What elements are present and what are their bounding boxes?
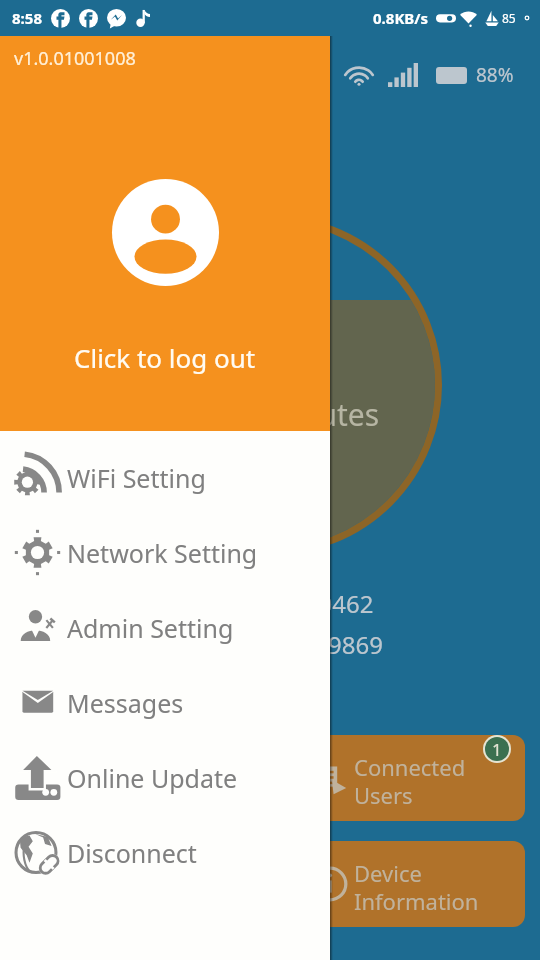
button[interactable]: Connected Users — [166, 735, 525, 821]
button[interactable]: WiFi Setting — [0, 440, 330, 515]
staticText: Device Information — [354, 858, 479, 916]
button[interactable]: Admin Setting — [0, 590, 330, 665]
staticText: Connected Users — [354, 752, 466, 810]
button[interactable]: Messages — [0, 665, 330, 740]
staticText: 1 — [492, 738, 502, 761]
staticText: IMEI: 000462 — [227, 587, 374, 620]
staticText: 8:58 — [12, 8, 42, 28]
staticText: 88% — [476, 62, 514, 88]
staticText: 0.8KB/s — [373, 8, 429, 28]
staticText: Click to log out — [74, 340, 256, 375]
button[interactable]: v1.0.01001008 — [0, 36, 330, 431]
button[interactable]: Network Setting — [0, 515, 330, 590]
staticText: WiFi Setting — [67, 461, 206, 495]
staticText: Network Setting — [67, 536, 258, 570]
staticText: Admin Setting — [67, 611, 234, 645]
staticText: SN: 89229869 — [229, 628, 383, 661]
staticText: Disconnect — [67, 836, 197, 870]
staticText: Messages — [67, 686, 184, 720]
staticText: v1.0.01001008 — [14, 46, 136, 71]
button[interactable]: Disconnect — [0, 815, 330, 890]
staticText: Minutes — [265, 394, 380, 435]
button[interactable]: Online Update — [0, 740, 330, 815]
staticText: 85 — [502, 10, 516, 26]
button[interactable]: Device Information — [166, 841, 525, 927]
staticText: Online Update — [67, 761, 238, 795]
